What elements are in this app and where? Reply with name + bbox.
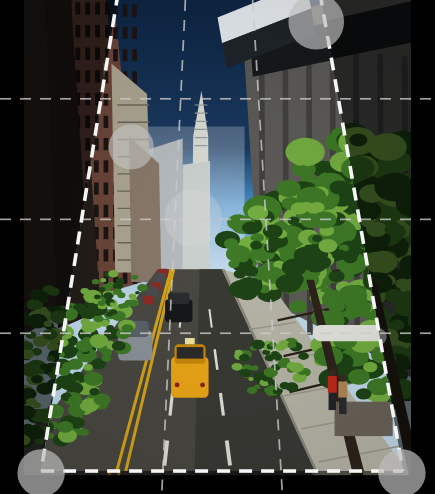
button[interactable]: Bottom right crop handle bbox=[378, 449, 425, 494]
button[interactable]: Center crop handle bbox=[164, 189, 222, 247]
button[interactable]: Bottom left crop handle bbox=[17, 449, 64, 494]
button[interactable]: Top right crop handle bbox=[288, 0, 344, 50]
button[interactable]: Left crop handle bbox=[109, 124, 154, 169]
